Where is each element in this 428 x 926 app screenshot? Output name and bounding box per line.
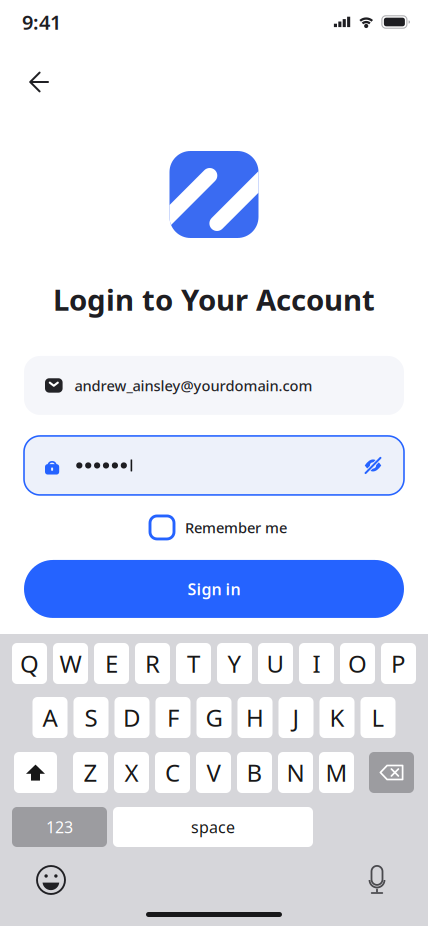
button[interactable]: T: [176, 643, 211, 684]
staticText: A: [42, 702, 57, 733]
staticText: 123: [46, 816, 73, 838]
button[interactable]: N: [278, 752, 313, 793]
staticText: Login to Your Account: [53, 280, 375, 319]
button[interactable]: F: [155, 697, 190, 738]
staticText: C: [165, 757, 180, 788]
button[interactable]: Q: [12, 643, 47, 684]
button[interactable]: Emoji keyboard: [29, 863, 73, 897]
staticText: L: [371, 702, 384, 733]
staticText: P: [391, 648, 406, 679]
staticText: F: [167, 702, 179, 733]
button[interactable]: L: [360, 697, 395, 738]
staticText: 9:41: [22, 9, 61, 35]
button[interactable]: J: [278, 697, 313, 738]
button[interactable]: Show password: [356, 448, 390, 482]
button[interactable]: V: [196, 752, 231, 793]
button[interactable]: H: [237, 697, 272, 738]
staticText: W: [59, 648, 81, 679]
button[interactable]: U: [258, 643, 293, 684]
button[interactable]: Z: [73, 752, 108, 793]
staticText: O: [348, 648, 367, 679]
button[interactable]: X: [114, 752, 149, 793]
button[interactable]: D: [114, 697, 149, 738]
button[interactable]: R: [135, 643, 170, 684]
staticText: andrew_ainsley@yourdomain.com: [75, 376, 313, 395]
staticText: D: [123, 702, 141, 733]
button[interactable]: K: [319, 697, 354, 738]
staticText: S: [84, 702, 97, 733]
staticText: I: [312, 648, 320, 679]
button[interactable]: P: [381, 643, 416, 684]
staticText: M: [325, 757, 347, 788]
staticText: Q: [20, 648, 39, 679]
button[interactable]: Delete: [369, 752, 414, 793]
staticText: J: [292, 702, 299, 733]
staticText: V: [206, 757, 220, 788]
staticText: T: [187, 648, 200, 679]
button[interactable]: A: [32, 697, 67, 738]
button[interactable]: space: [113, 807, 313, 847]
staticText: H: [246, 702, 264, 733]
staticText: space: [191, 816, 235, 838]
button[interactable]: W: [53, 643, 88, 684]
staticText: X: [124, 757, 138, 788]
button[interactable]: B: [237, 752, 272, 793]
staticText: Y: [227, 648, 241, 679]
staticText: U: [266, 648, 284, 679]
button[interactable]: Back: [17, 60, 61, 104]
button[interactable]: I: [299, 643, 334, 684]
button[interactable]: Dictation: [355, 863, 399, 897]
button[interactable]: M: [319, 752, 354, 793]
staticText: R: [145, 648, 160, 679]
staticText: B: [246, 757, 262, 788]
staticText: Z: [83, 757, 97, 788]
staticText: G: [205, 702, 222, 733]
button[interactable]: Remember me: [150, 516, 287, 539]
button[interactable]: Y: [217, 643, 252, 684]
button[interactable]: 123: [12, 807, 107, 847]
staticText: K: [329, 702, 344, 733]
button[interactable]: E: [94, 643, 129, 684]
button[interactable]: G: [196, 697, 231, 738]
staticText: E: [105, 648, 118, 679]
button[interactable]: S: [73, 697, 108, 738]
button[interactable]: O: [340, 643, 375, 684]
button[interactable]: Sign in: [24, 560, 404, 618]
staticText: Remember me: [185, 518, 287, 537]
staticText: Sign in: [187, 578, 240, 599]
staticText: N: [286, 757, 304, 788]
button[interactable]: C: [155, 752, 190, 793]
button[interactable]: Shift: [14, 752, 57, 793]
